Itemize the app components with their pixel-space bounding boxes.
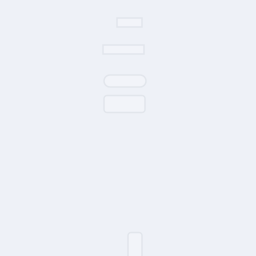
button[interactable]: Capsule action — [104, 75, 146, 87]
button[interactable]: Label — [103, 45, 144, 54]
button[interactable]: Primary action — [104, 95, 145, 112]
button[interactable]: Title — [117, 18, 142, 27]
